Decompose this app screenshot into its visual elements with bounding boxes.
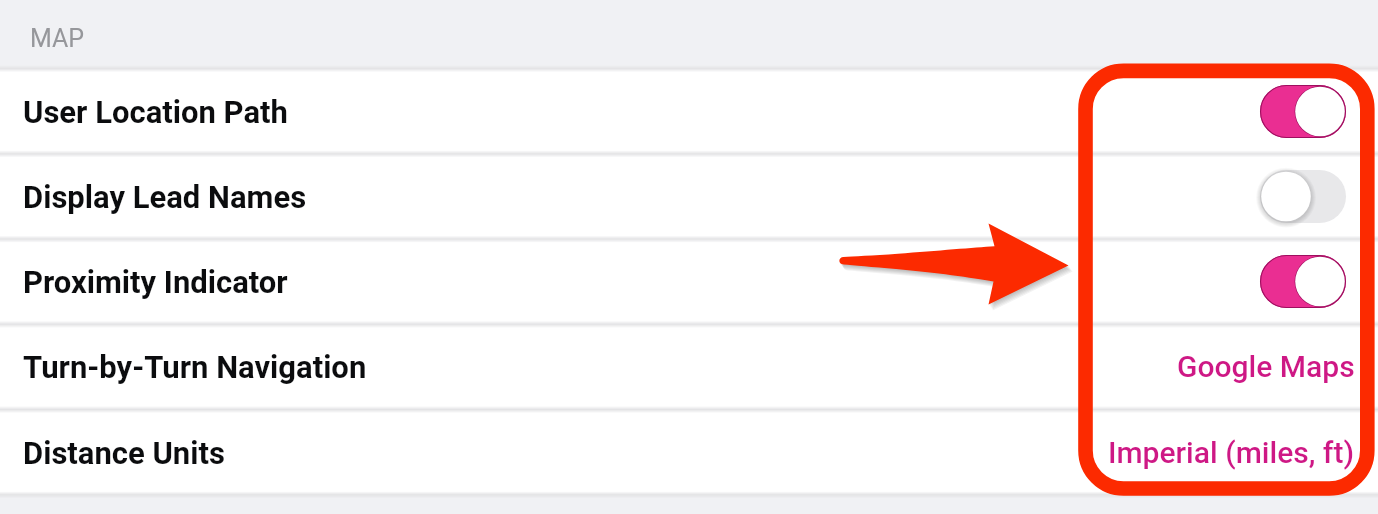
button[interactable]: Switch on	[1260, 85, 1346, 138]
button[interactable]: Distance Units	[0, 410, 1378, 495]
button[interactable]: Display Lead Names	[0, 154, 1378, 239]
staticText: Google Maps	[1177, 349, 1355, 384]
staticText: MAP	[30, 24, 85, 53]
button[interactable]: Switch on	[1260, 255, 1346, 308]
button[interactable]: MAP	[0, 0, 1378, 69]
staticText: Proximity Indicator	[23, 264, 288, 300]
button[interactable]: Switch off	[1260, 170, 1346, 223]
staticText: User Location Path	[23, 94, 288, 130]
button[interactable]: User Location Path	[0, 69, 1378, 154]
button[interactable]: Turn-by-Turn Navigation	[0, 324, 1378, 409]
staticText: Imperial (miles, ft)	[1108, 435, 1355, 470]
staticText: Turn-by-Turn Navigation	[23, 349, 367, 385]
button[interactable]: Proximity Indicator	[0, 239, 1378, 324]
staticText: Distance Units	[23, 435, 225, 471]
staticText: Display Lead Names	[23, 179, 307, 215]
